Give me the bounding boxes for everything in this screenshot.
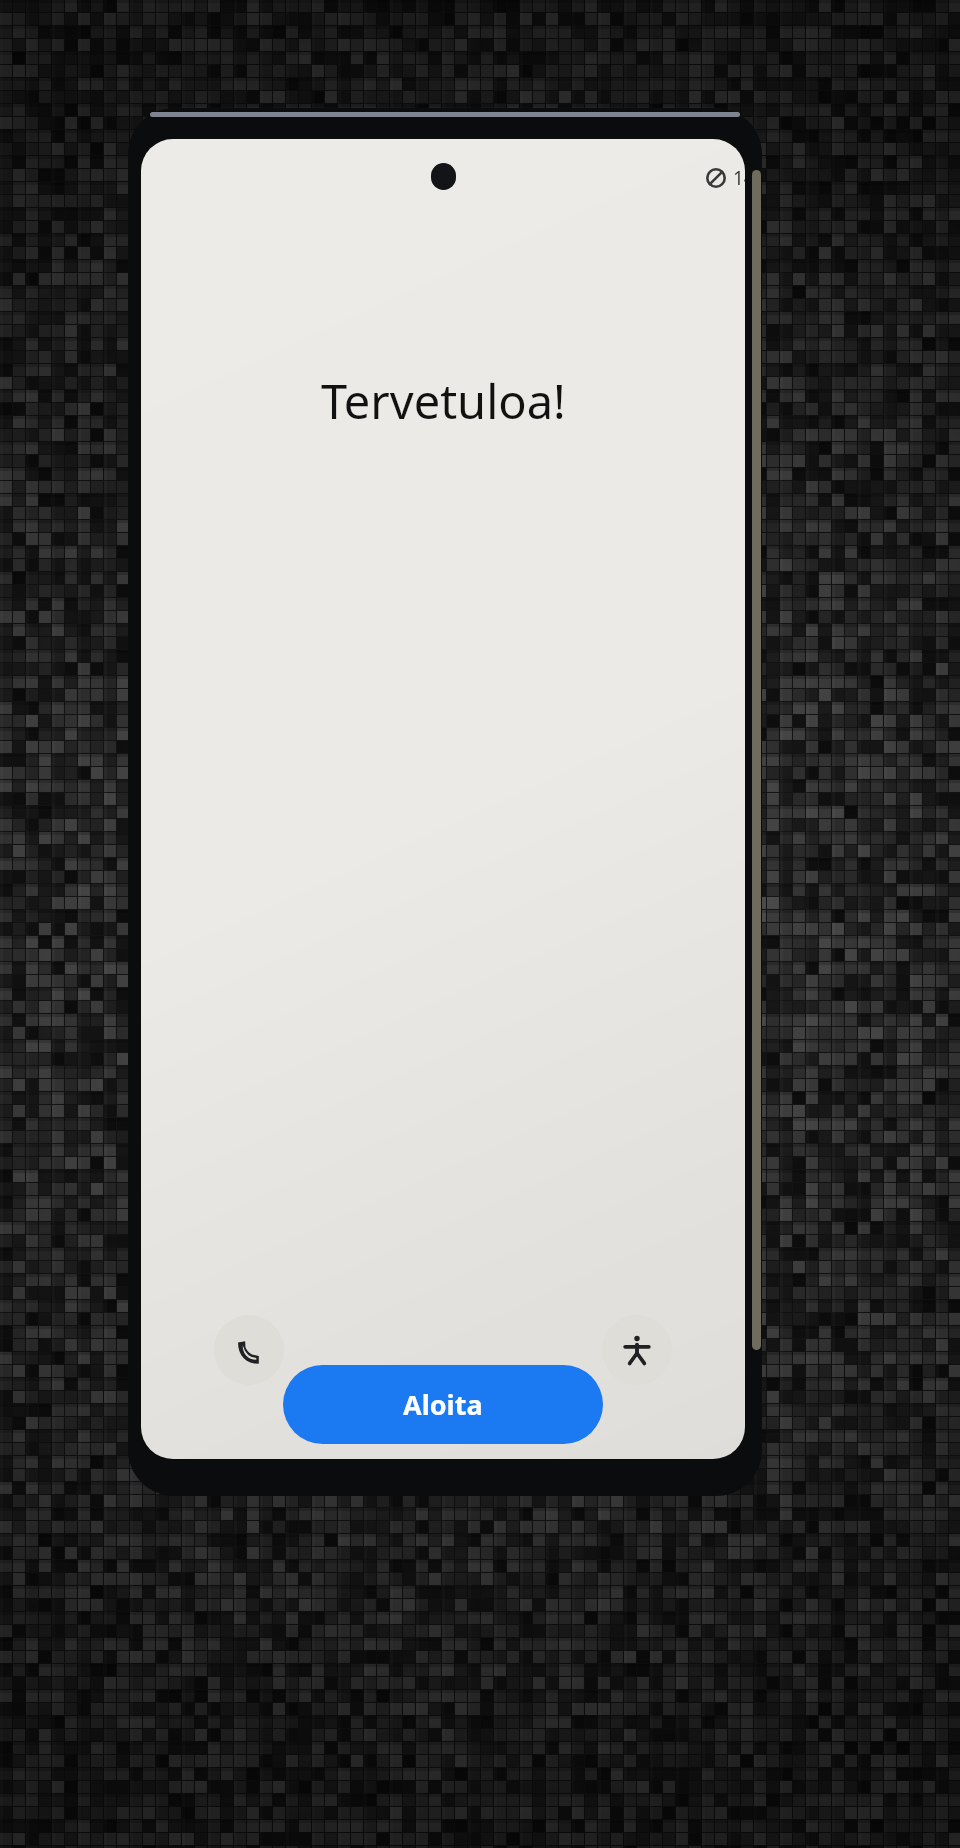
staticText: 14% <box>733 165 745 191</box>
staticText: Aloita <box>403 1386 483 1423</box>
staticText: Tervetuloa! <box>321 369 566 433</box>
button[interactable]: Aloita <box>283 1365 603 1444</box>
button[interactable]: Emergency call <box>214 1315 284 1385</box>
button[interactable]: Accessibility <box>602 1315 672 1385</box>
